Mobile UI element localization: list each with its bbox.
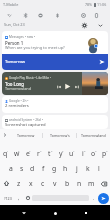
staticText: x [29,179,33,188]
button[interactable]: x [25,176,37,191]
staticText: 5 [51,149,53,152]
staticText: When are you trying to meet up? [5,45,65,50]
button[interactable]: Home [48,206,62,220]
button[interactable]: Play [62,81,73,92]
button[interactable]: Previous track [54,82,63,91]
button[interactable]: Messages • now • [2,31,108,70]
staticText: u [69,149,74,158]
staticText: Too Long [5,81,24,87]
button[interactable]: Settings [80,21,89,30]
staticText: . [93,195,95,202]
button[interactable]: v [49,176,61,191]
button[interactable]: z [13,176,25,191]
button[interactable]: h [60,161,71,176]
staticText: 11:06 [97,2,107,7]
staticText: Tomorrow [17,133,35,138]
button[interactable]: m [85,176,97,191]
button[interactable]: Recent apps [79,206,93,220]
staticText: i [82,149,84,158]
staticText: Tomorrowland [81,133,106,138]
staticText: T-Mobile [3,2,19,7]
button[interactable]: l [93,161,104,176]
button[interactable]: o [88,146,99,161]
button[interactable]: Next track [72,82,81,91]
button[interactable]: f [38,161,49,176]
staticText: , [18,195,20,202]
button[interactable]: Send [98,193,109,204]
button[interactable]: b [61,176,73,191]
button[interactable]: u [66,146,77,161]
button[interactable]: Do not disturb [35,10,46,21]
staticText: g [52,164,57,173]
staticText: z [17,179,21,188]
staticText: t [48,149,51,158]
staticText: h [63,164,68,173]
staticText: Tomorrowland [5,86,32,91]
staticText: v [53,179,57,188]
button[interactable]: Google • 2h • [2,96,108,113]
staticText: s [20,164,24,173]
button[interactable]: Backspace [97,176,110,191]
button[interactable]: Tomorrow [9,129,42,141]
button[interactable]: j [71,161,82,176]
staticText: w [14,149,20,158]
staticText: k [86,164,90,173]
button[interactable]: . [89,191,98,205]
staticText: Sun, Oct 23 [4,22,25,27]
button[interactable]: e [22,146,33,161]
button[interactable]: ?123 [1,191,14,205]
staticText: q [3,149,8,158]
button[interactable]: s [16,161,27,176]
button[interactable]: Bluetooth [20,10,31,21]
button[interactable]: g [49,161,60,176]
button[interactable]: , [14,191,23,205]
button[interactable]: Wi-Fi off [4,10,15,21]
button[interactable]: p [99,146,110,161]
button[interactable]: Google Play Music • Like Mike • [2,72,108,95]
staticText: 2 [18,149,20,152]
staticText: c [41,179,45,188]
button[interactable]: Auto-rotate [78,10,89,21]
staticText: Messages • now • [9,35,36,39]
button[interactable]: t [44,146,55,161]
staticText: 8 [84,149,86,152]
staticText: o [91,149,96,158]
staticText: Google • 2h • [9,99,29,103]
button[interactable]: d [27,161,38,176]
button[interactable]: r [33,146,44,161]
button[interactable]: Shift [0,176,13,191]
button[interactable]: w [11,146,22,161]
button[interactable]: Emoji [23,191,32,205]
staticText: y [59,149,63,158]
button[interactable]: i [77,146,88,161]
button[interactable]: a [6,161,16,176]
button[interactable]: android System • 26d • [2,115,108,129]
staticText: 9 [95,149,97,152]
button[interactable]: Tomorrowland [77,129,110,141]
button[interactable]: c [37,176,49,191]
staticText: b [65,179,70,188]
button[interactable]: n [73,176,85,191]
staticText: 6 [62,149,64,152]
staticText: d [30,164,35,173]
button[interactable]: Tomorrow [2,54,108,70]
staticText: Google Play Music • Like Mike • [9,76,51,80]
button[interactable]: Hide keyboard [17,206,31,220]
staticText: a [9,164,13,173]
staticText: 3 [29,149,31,152]
button[interactable]: y [55,146,66,161]
staticText: 0 [106,149,108,152]
staticText: r [37,149,40,158]
button[interactable]: Battery saver [91,10,102,21]
button[interactable]: k [82,161,93,176]
staticText: j [76,164,78,173]
button[interactable]: Expand quick settings [96,21,105,30]
button[interactable]: q [0,146,11,161]
button[interactable]: Tomorrow's [43,129,76,141]
button[interactable]: Flashlight [52,10,63,21]
button[interactable]: More suggestions [0,129,9,141]
staticText: 7 [73,149,75,152]
staticText: l [98,164,100,173]
staticText: p [102,149,107,158]
